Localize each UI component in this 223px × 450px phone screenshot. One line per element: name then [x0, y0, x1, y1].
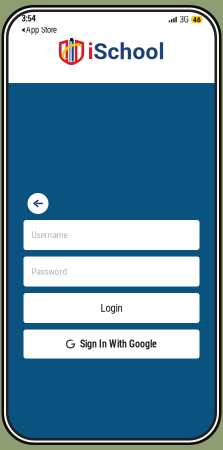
button[interactable]: Back — [27, 193, 48, 214]
button[interactable]: Username — [23, 220, 199, 250]
button[interactable]: Login — [23, 293, 199, 323]
staticText: Sign In With Google — [80, 338, 157, 350]
button[interactable]: Sign In With Google — [23, 329, 199, 358]
staticText: 3G — [180, 14, 189, 25]
staticText: 46 — [193, 15, 201, 24]
staticText: School — [93, 38, 164, 65]
staticText: App Store — [26, 25, 57, 35]
button[interactable]: Password — [23, 256, 199, 286]
staticText: Login — [100, 302, 122, 314]
staticText: 3:54 — [21, 13, 35, 24]
staticText: Password — [31, 266, 67, 277]
staticText: Username — [31, 229, 67, 240]
staticText: i — [87, 38, 93, 65]
